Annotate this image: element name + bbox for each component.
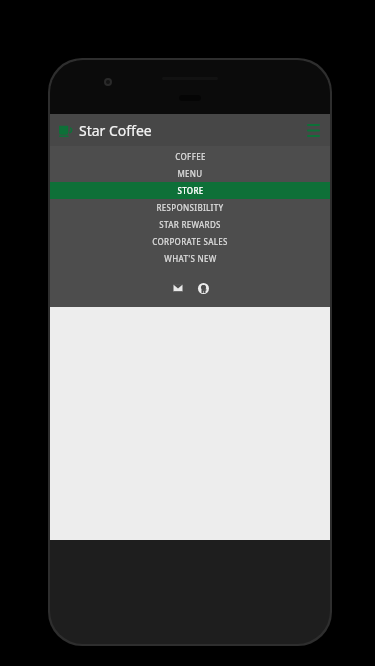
other: Star Coffee logo: [59, 124, 73, 138]
button[interactable]: CORPORATE SALES: [50, 233, 330, 250]
staticText: Star Coffee: [79, 121, 152, 140]
staticText: COFFEE: [175, 151, 206, 162]
button[interactable]: STAR REWARDS: [50, 216, 330, 233]
button[interactable]: MENU: [50, 165, 330, 182]
button[interactable]: COFFEE: [50, 148, 330, 165]
staticText: STORE: [177, 185, 204, 196]
button[interactable]: RESPONSIBILITY: [50, 199, 330, 216]
button[interactable]: WHAT'S NEW: [50, 250, 330, 267]
staticText: WHAT'S NEW: [164, 253, 217, 264]
button[interactable]: Star Coffee logo: [59, 121, 152, 140]
button[interactable]: Menu: [303, 120, 323, 140]
staticText: RESPONSIBILITY: [156, 202, 224, 213]
button[interactable]: Email: [169, 279, 187, 297]
button[interactable]: GitHub: [194, 279, 212, 297]
staticText: STAR REWARDS: [159, 219, 221, 230]
staticText: MENU: [177, 168, 203, 179]
staticText: CORPORATE SALES: [152, 236, 228, 247]
button[interactable]: STORE: [50, 182, 330, 199]
